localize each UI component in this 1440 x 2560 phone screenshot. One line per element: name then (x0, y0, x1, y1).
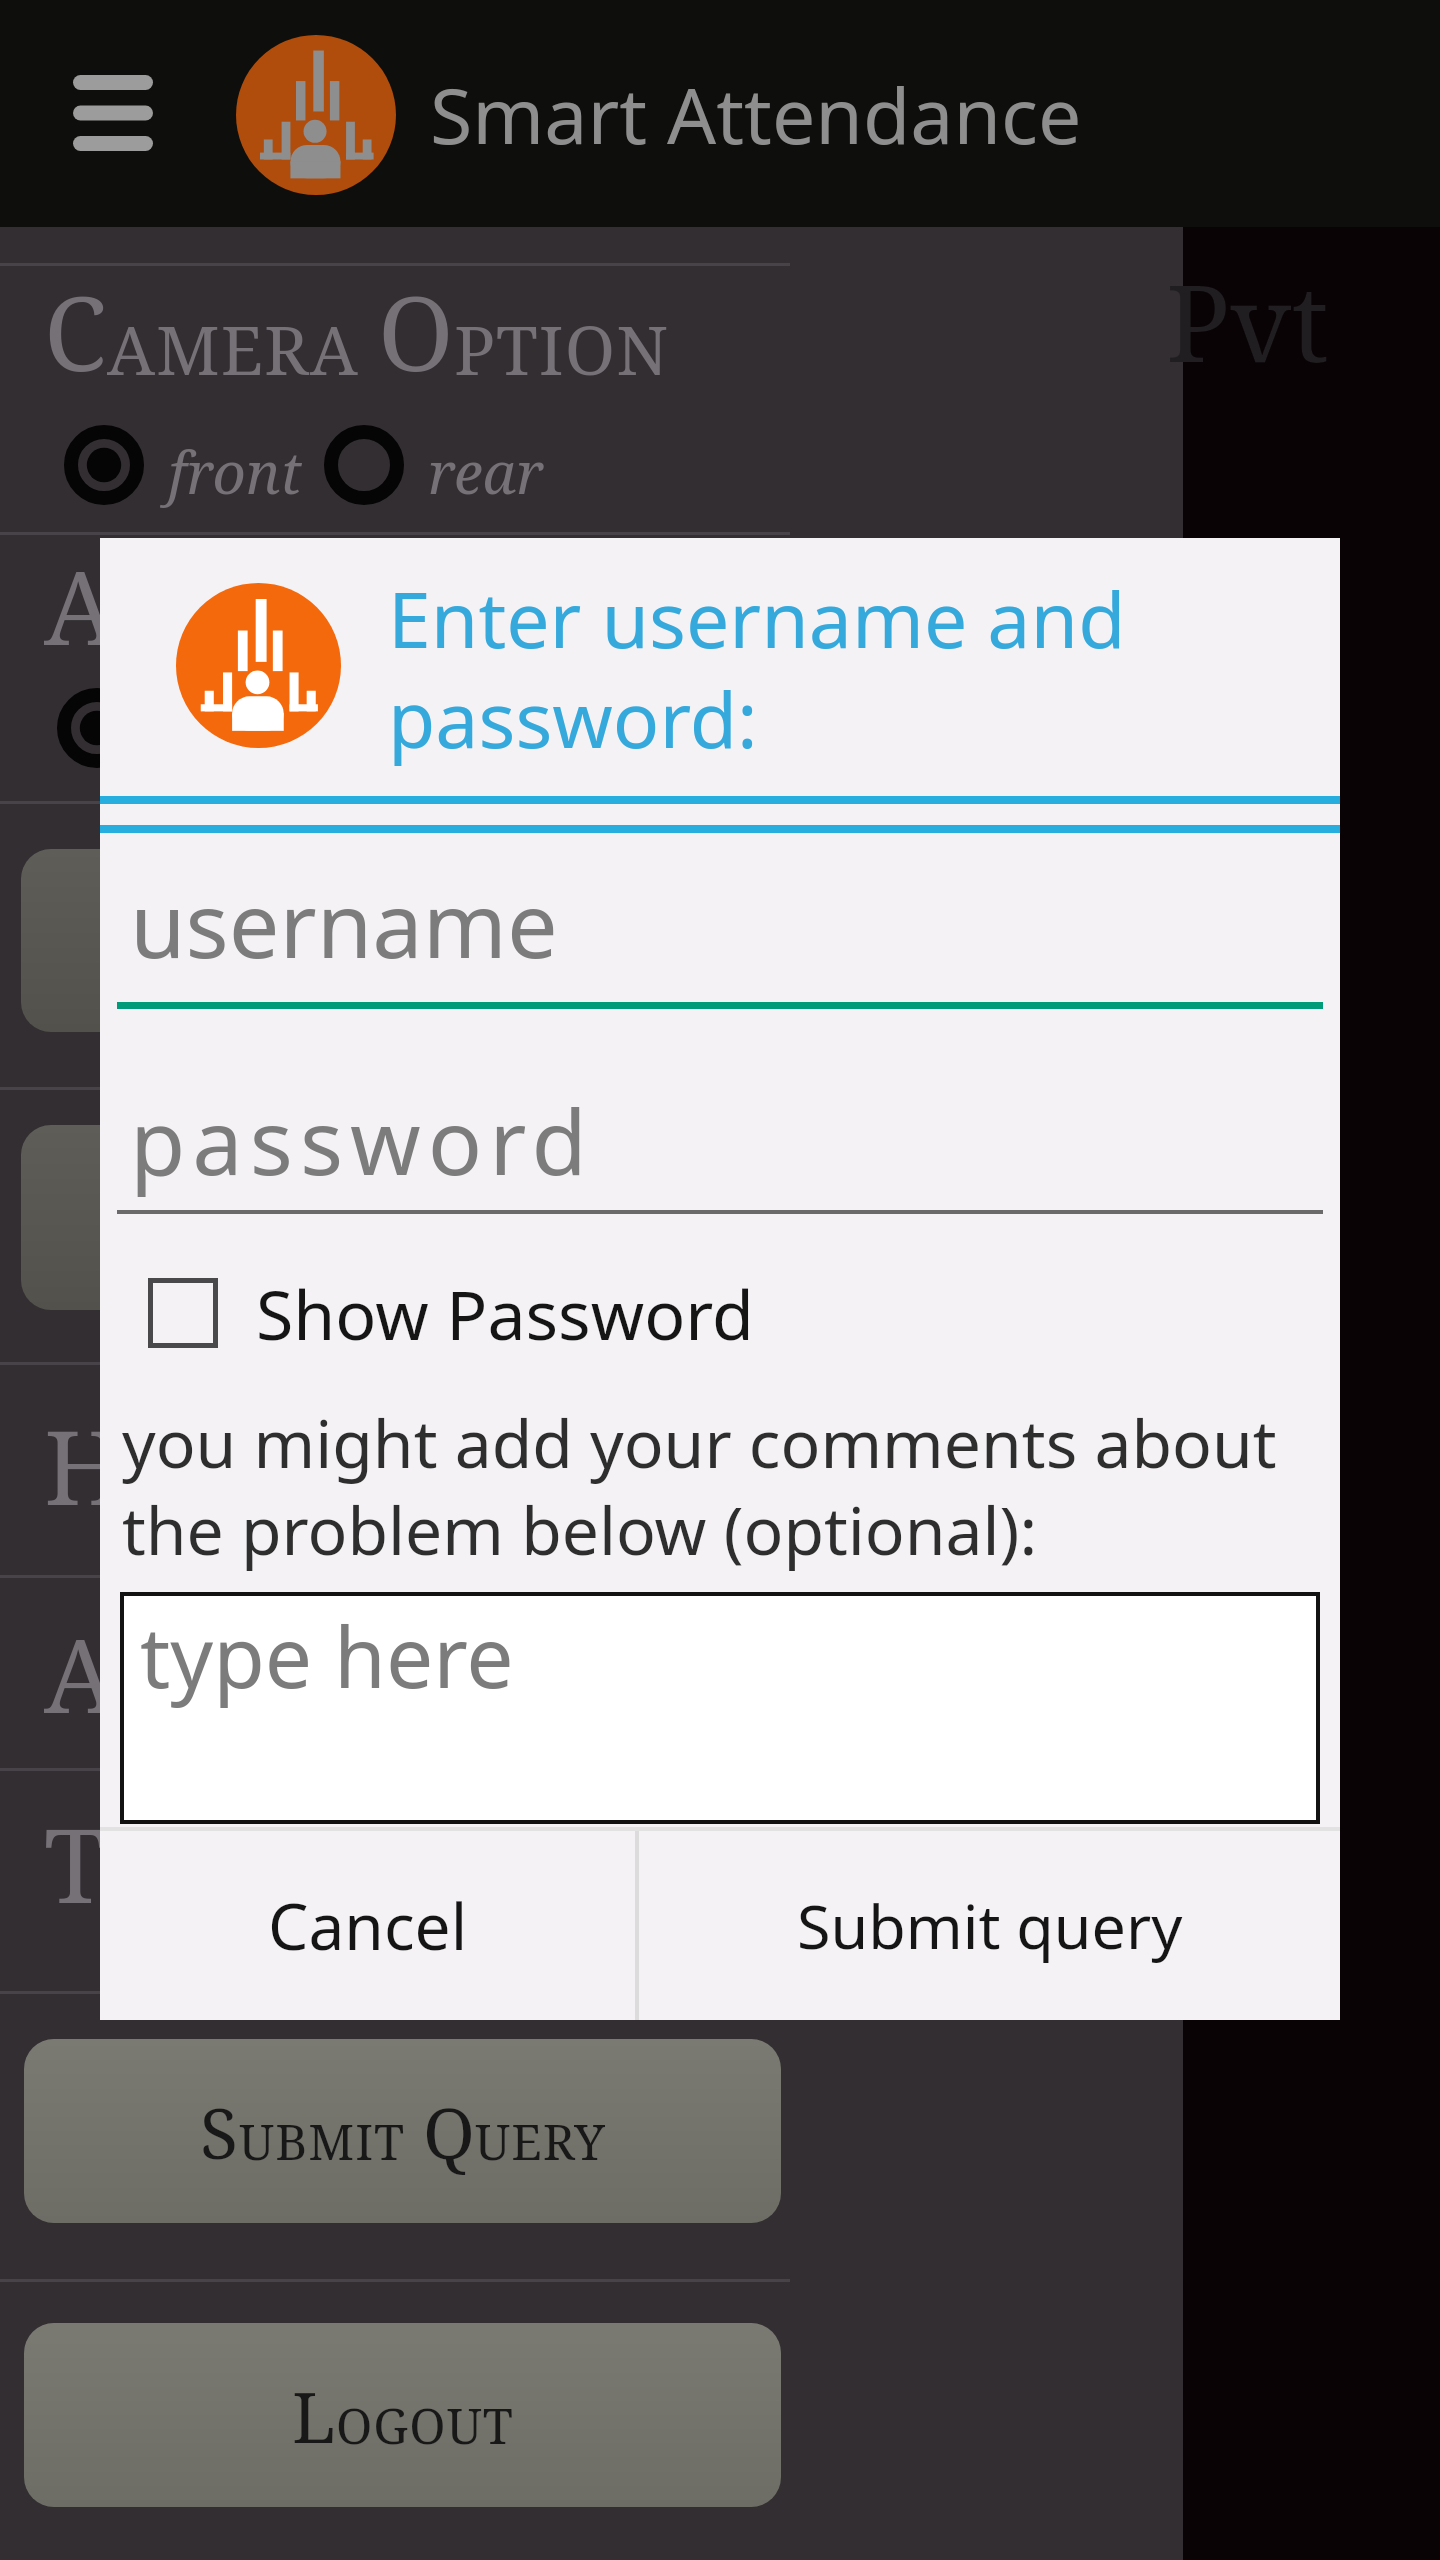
staticText: YPE (617, 576, 746, 669)
staticText: password (130, 1079, 594, 1202)
staticText: rear (428, 432, 544, 511)
staticText: PTION (454, 302, 670, 395)
staticText: Q (423, 2084, 475, 2179)
staticText: A (44, 536, 116, 675)
staticText: Enter username and password: (388, 566, 1268, 770)
staticText: O (378, 262, 454, 401)
staticText: Show Password (256, 1267, 754, 1360)
staticText: Smart Attendance (430, 62, 1082, 167)
button[interactable]: Open navigation menu (33, 33, 193, 193)
staticText: type here (140, 1598, 514, 1712)
button[interactable]: Submit query (639, 1831, 1340, 2020)
staticText: TTENDANCE (116, 1644, 535, 1737)
button[interactable]: Select option (57, 688, 137, 768)
staticText: L (292, 2368, 336, 2463)
button[interactable] (21, 1125, 781, 1310)
button[interactable]: type here (120, 1592, 1320, 1824)
staticText: C (44, 262, 107, 401)
staticText: UERY (475, 2108, 606, 2175)
staticText: OTAL (107, 1834, 289, 1927)
staticText: T (554, 536, 617, 675)
staticText: Cancel (268, 1882, 468, 1969)
button[interactable] (21, 849, 781, 1032)
staticText: OUR (125, 1436, 272, 1529)
staticText: A (44, 1604, 116, 1743)
button[interactable]: Show Password (148, 1248, 908, 1378)
staticText: H (44, 1396, 125, 1535)
button[interactable]: S (24, 2039, 781, 2223)
button[interactable]: Select option (64, 425, 144, 505)
staticText: you might add your comments about the pr… (122, 1397, 1338, 1574)
button[interactable]: Cancel (100, 1831, 635, 2020)
button[interactable]: Select option (324, 425, 404, 505)
staticText: Submit query (797, 1884, 1183, 1967)
staticText: OGOUT (336, 2392, 514, 2459)
staticText: AMERA (107, 302, 378, 395)
staticText: TTENDANCE (116, 576, 554, 669)
staticText: front (168, 432, 302, 511)
button[interactable]: L (24, 2323, 781, 2507)
staticText: T (44, 1794, 107, 1933)
staticText: UBMIT (239, 2108, 406, 2175)
staticText: username (130, 862, 558, 985)
staticText: S (200, 2084, 239, 2179)
staticText: Pvt (1166, 249, 1329, 393)
